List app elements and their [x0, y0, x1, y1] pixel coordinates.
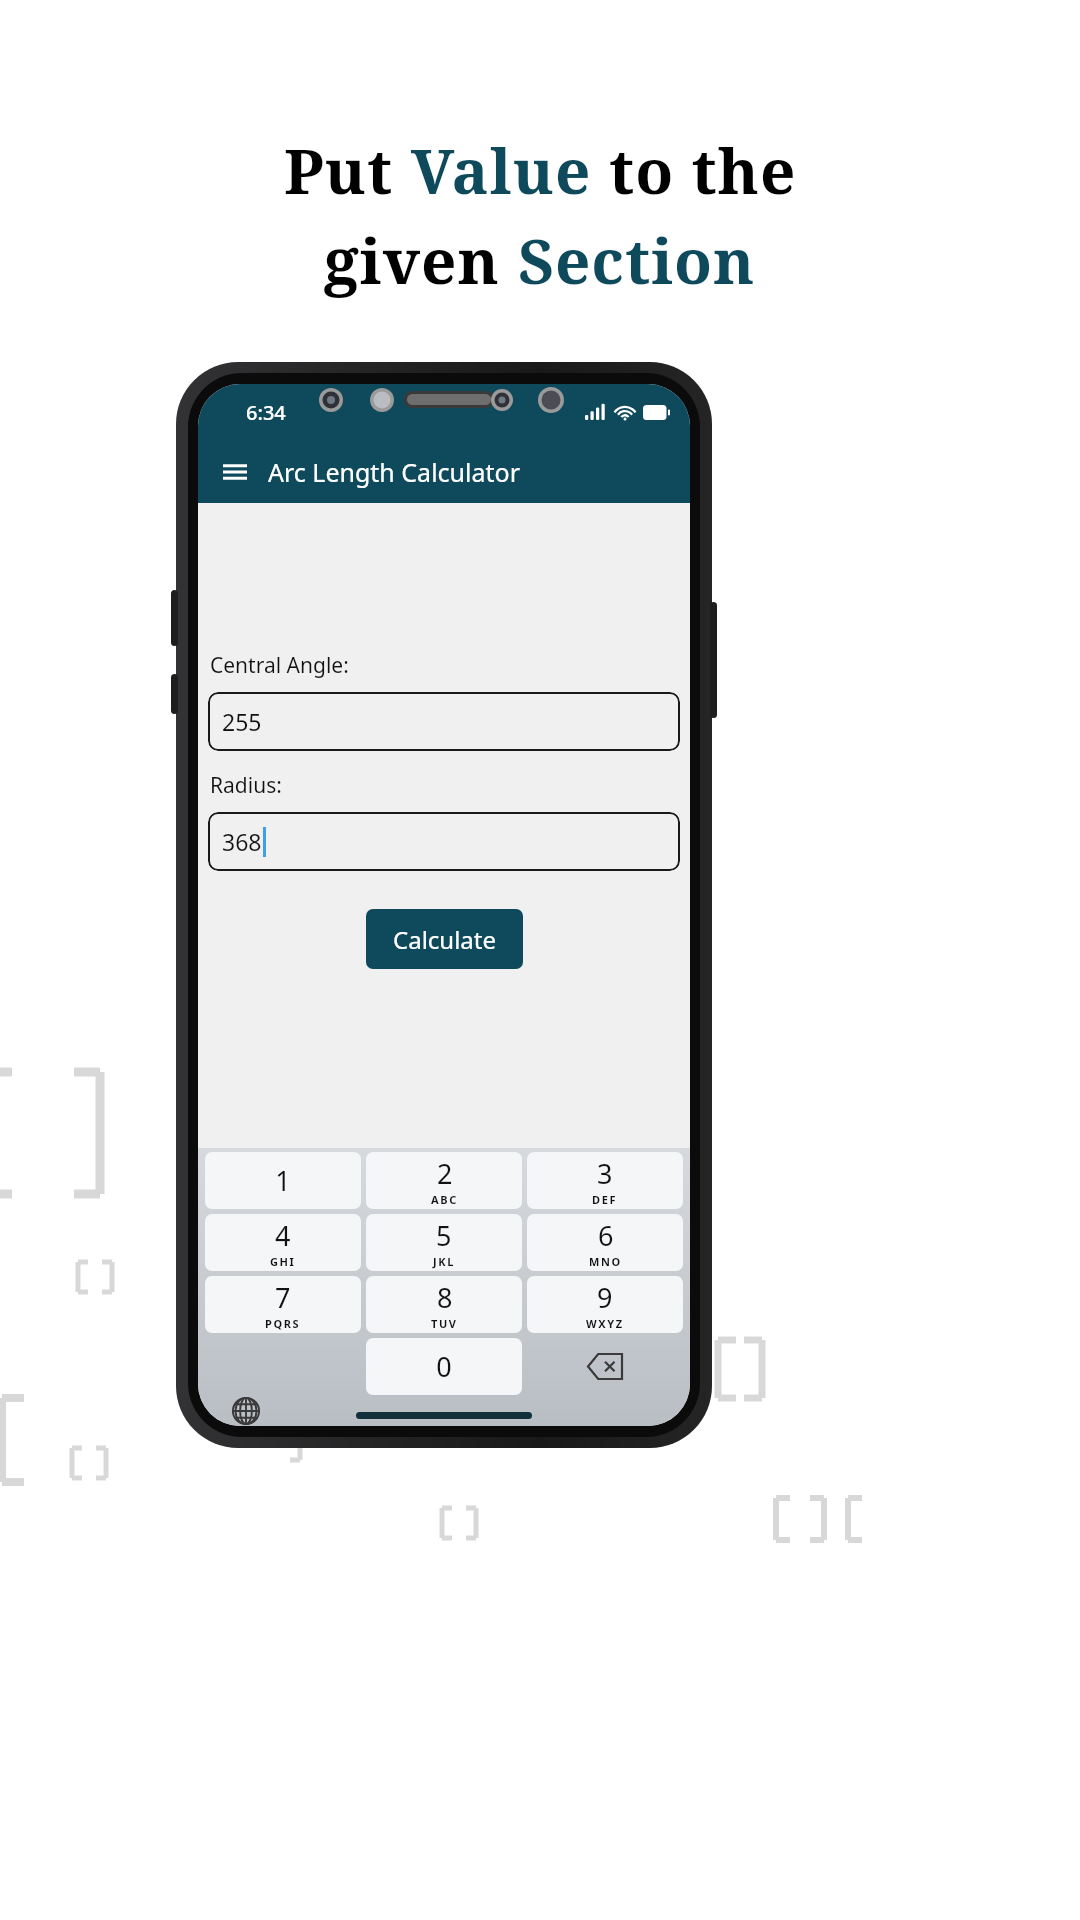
staticText: JKL [433, 1254, 455, 1269]
staticText: DEF [592, 1192, 618, 1207]
staticText: Value [411, 128, 592, 212]
staticText: 0 [436, 1348, 452, 1385]
button[interactable]: Change keyboard language [226, 1395, 266, 1426]
staticText: 9 [597, 1279, 613, 1316]
staticText: 255 [222, 706, 262, 737]
staticText: 4 [275, 1217, 291, 1254]
staticText: 3 [597, 1155, 613, 1192]
staticText: Section [518, 218, 756, 302]
button[interactable]: 0 [366, 1338, 522, 1395]
staticText: Arc Length Calculator [268, 455, 520, 489]
button[interactable]: 2 [366, 1152, 522, 1209]
staticText: TUV [431, 1316, 458, 1331]
staticText: Central Angle: [210, 651, 349, 680]
button[interactable]: Backspace [527, 1338, 683, 1395]
button[interactable]: 255 [208, 692, 680, 751]
staticText: WXYZ [586, 1316, 624, 1331]
staticText: Calculate [393, 923, 497, 956]
staticText: 6:34 [246, 399, 286, 426]
staticText: 368 [222, 826, 262, 857]
button[interactable]: 7 [205, 1276, 361, 1333]
staticText: given [324, 218, 518, 302]
staticText: 5 [436, 1217, 452, 1254]
button[interactable]: 8 [366, 1276, 522, 1333]
staticText: 7 [275, 1279, 291, 1316]
staticText: Radius: [210, 771, 282, 800]
staticText: GHI [270, 1254, 296, 1269]
staticText: ABC [431, 1192, 458, 1207]
button[interactable]: 4 [205, 1214, 361, 1271]
button[interactable]: 1 [205, 1152, 361, 1209]
button[interactable]: 3 [527, 1152, 683, 1209]
staticText: 2 [437, 1155, 453, 1192]
button[interactable]: 368 [208, 812, 680, 871]
staticText: 8 [437, 1279, 453, 1316]
staticText: Put [284, 128, 411, 212]
button[interactable]: Calculate [366, 909, 523, 969]
staticText: to the [592, 128, 797, 212]
staticText: 1 [275, 1162, 291, 1199]
staticText: MNO [589, 1254, 622, 1269]
button[interactable]: 5 [366, 1214, 522, 1271]
button[interactable]: 9 [527, 1276, 683, 1333]
button[interactable]: Open navigation menu [212, 449, 258, 495]
staticText: PQRS [265, 1316, 301, 1331]
staticText: 6 [598, 1217, 614, 1254]
button[interactable]: 6 [527, 1214, 683, 1271]
